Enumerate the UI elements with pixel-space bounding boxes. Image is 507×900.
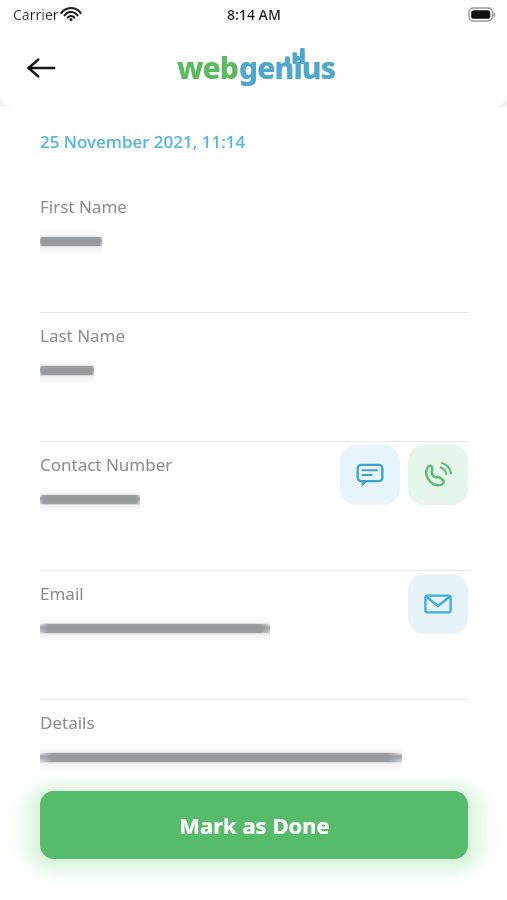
staticText: Email	[40, 582, 84, 605]
button[interactable]: Send message	[340, 445, 400, 505]
staticText: Last Name	[40, 324, 126, 347]
button[interactable]: Send email	[408, 574, 468, 634]
staticText: Details	[40, 711, 95, 734]
button[interactable]: Back	[14, 41, 68, 95]
staticText: Contact Number	[40, 453, 173, 476]
button[interactable]: Call	[408, 445, 468, 505]
staticText: web	[177, 47, 239, 88]
button[interactable]: Mark as Done	[40, 791, 468, 859]
staticText: genius	[239, 47, 336, 88]
staticText: First Name	[40, 195, 127, 218]
staticText: Mark as Done	[179, 810, 330, 840]
staticText: 8:14 AM	[227, 5, 281, 24]
staticText: Carrier	[13, 5, 59, 24]
staticText: 25 November 2021, 11:14	[40, 130, 246, 153]
